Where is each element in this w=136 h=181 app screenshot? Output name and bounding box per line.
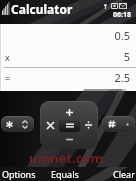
staticText: 0.5 [114,28,130,43]
button[interactable]: Plus [63,106,75,118]
button[interactable]: 0.5 [0,24,136,91]
staticText: x [5,51,10,63]
staticText: umnet.com [29,149,104,167]
button[interactable]: Calculator [11,1,73,17]
staticText: 5 [123,49,130,64]
button[interactable]: Star key [1,116,34,132]
button[interactable]: Clear [113,168,135,180]
staticText: Clear [113,168,135,180]
staticText: Equals [51,168,79,180]
button[interactable]: Equals [51,168,79,180]
button[interactable]: Divide [82,119,94,131]
button[interactable]: Hash key [102,116,135,132]
button[interactable]: Navigation keys [40,101,98,149]
button[interactable]: Minus [63,133,75,145]
staticText: 06:18 [113,10,131,20]
button[interactable]: Options [2,168,36,180]
button[interactable]: Multiply [44,119,56,131]
staticText: Calculator [11,1,73,17]
staticText: Options [2,168,36,180]
button[interactable]: Equals [59,119,80,132]
staticText: 2.5 [114,70,130,85]
staticText: = [5,72,11,84]
